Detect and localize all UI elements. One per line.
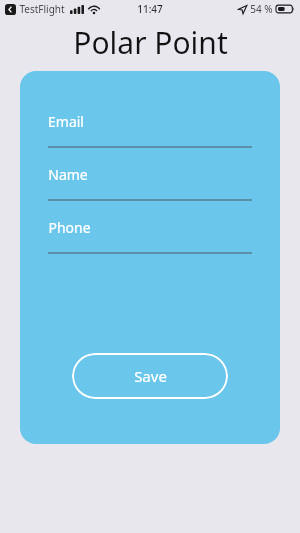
- staticText: Phone: [48, 218, 91, 237]
- staticText: 54 %: [250, 2, 273, 16]
- staticText: Name: [48, 165, 88, 184]
- button[interactable]: Phone: [48, 218, 252, 254]
- staticText: Save: [134, 366, 167, 386]
- button[interactable]: Save: [72, 353, 228, 399]
- button[interactable]: Email: [48, 112, 252, 148]
- staticText: TestFlight: [19, 2, 65, 16]
- button[interactable]: Name: [48, 165, 252, 201]
- staticText: 11:47: [137, 2, 163, 16]
- staticText: Polar Point: [73, 22, 228, 63]
- staticText: Email: [48, 112, 84, 131]
